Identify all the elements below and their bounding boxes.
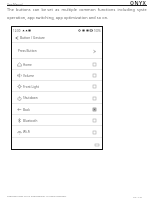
button[interactable]: Bluetooth xyxy=(12,115,102,126)
button[interactable]: Shutdown xyxy=(12,92,102,104)
staticText: 44 / 121 xyxy=(133,195,143,198)
staticText: Shutdown xyxy=(23,96,38,100)
staticText: Button / Gesture xyxy=(20,36,45,40)
staticText: User Manual xyxy=(7,3,23,7)
button[interactable]: Home xyxy=(12,59,102,70)
button[interactable]: Press Button xyxy=(12,43,102,59)
staticText: Home xyxy=(23,63,32,67)
button[interactable]: Volume xyxy=(12,70,102,81)
staticText: Wi-Fi xyxy=(23,130,31,134)
staticText: Front Light xyxy=(23,85,39,89)
staticText: Back xyxy=(23,108,30,112)
staticText: Bluetooth xyxy=(23,119,38,123)
button[interactable]: Front Light xyxy=(12,81,102,92)
other: Back xyxy=(15,36,19,40)
staticText: 100% xyxy=(94,29,101,33)
staticText: ONYX xyxy=(130,0,147,7)
button[interactable]: Back xyxy=(12,104,102,115)
staticText: Volume xyxy=(23,74,35,78)
staticText: Copyright 2022 ONYX International. All r… xyxy=(7,195,67,198)
button[interactable]: Back xyxy=(12,34,102,42)
staticText: The buttons can be set as multiple commo… xyxy=(7,7,147,20)
button[interactable]: Wi-Fi xyxy=(12,126,102,138)
button[interactable]: Keyboard xyxy=(94,142,99,147)
staticText: Press Button xyxy=(18,49,37,53)
staticText: 12:00 xyxy=(13,29,21,33)
